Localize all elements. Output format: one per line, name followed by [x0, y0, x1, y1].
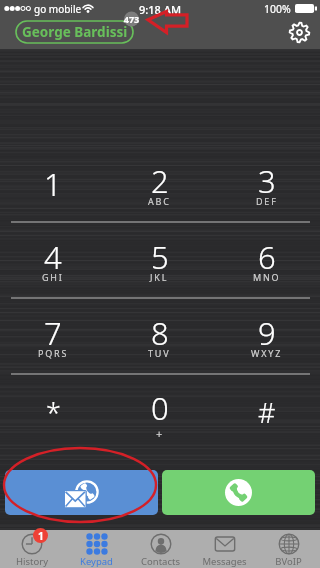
staticText: JKL [150, 271, 169, 283]
staticText: TUV [148, 347, 171, 359]
staticText: go mobile [34, 2, 82, 16]
button[interactable]: Call [162, 470, 315, 515]
button[interactable]: # [213, 374, 320, 450]
staticText: 3 [258, 160, 276, 202]
button[interactable]: Messages [192, 530, 256, 568]
button[interactable]: 7 [0, 298, 106, 374]
staticText: 1 [44, 163, 62, 205]
staticText: 5 [151, 236, 169, 278]
staticText: MNO [253, 271, 281, 283]
button[interactable]: 8 [106, 298, 213, 374]
button[interactable]: 2 [106, 146, 213, 222]
button[interactable]: 0 [106, 374, 213, 450]
staticText: 8 [151, 312, 169, 354]
staticText: 2 [151, 160, 169, 202]
staticText: 100% [264, 2, 291, 16]
staticText: 6 [258, 236, 276, 278]
button[interactable]: 1 [0, 146, 106, 222]
button[interactable]: Voicemail [5, 470, 158, 515]
staticText: + [156, 426, 163, 441]
button[interactable]: George Bardissi [16, 21, 133, 43]
staticText: 7 [44, 312, 62, 354]
staticText: BVoIP [275, 555, 302, 568]
staticText: Contacts [141, 555, 180, 568]
staticText: George Bardissi [22, 23, 128, 41]
button[interactable]: 5 [106, 222, 213, 298]
staticText: Keypad [80, 555, 113, 568]
staticText: ABC [148, 195, 171, 207]
button[interactable]: Contacts [128, 530, 192, 568]
staticText: GHI [42, 271, 64, 283]
button[interactable]: 1 [0, 530, 64, 568]
staticText: * [46, 394, 61, 431]
staticText: # [258, 394, 276, 431]
button[interactable]: 3 [213, 146, 320, 222]
staticText: 0 [151, 387, 169, 429]
button[interactable]: Settings [286, 19, 312, 45]
staticText: PQRS [38, 347, 69, 359]
staticText: DEF [256, 195, 278, 207]
staticText: 1 [38, 529, 44, 543]
staticText: Messages [202, 555, 247, 568]
staticText: 4 [44, 236, 62, 278]
button[interactable]: 6 [213, 222, 320, 298]
button[interactable]: BVoIP [256, 530, 320, 568]
staticText: 473 [122, 13, 141, 25]
staticText: WXYZ [251, 347, 283, 359]
button[interactable]: 9 [213, 298, 320, 374]
staticText: History [16, 555, 48, 568]
button[interactable]: Keypad [64, 530, 128, 568]
button[interactable]: * [0, 374, 106, 450]
button[interactable]: 4 [0, 222, 106, 298]
staticText: 9 [258, 312, 276, 354]
staticText: 9:18 AM [139, 2, 182, 17]
